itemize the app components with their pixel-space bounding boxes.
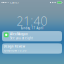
- staticText: Tomorrow 10:00: [4, 49, 27, 52]
- staticText: 21:40: [16, 13, 47, 29]
- button[interactable]: Alex Morgan: [2, 31, 62, 41]
- button[interactable]: Design Review: [2, 43, 62, 54]
- staticText: Sunday, 17 April: [20, 26, 43, 30]
- staticText: Carrier: [10, 1, 19, 4]
- staticText: Design Review: [4, 45, 25, 48]
- staticText: Alex Morgan: [10, 32, 28, 36]
- staticText: See you at eight: [10, 36, 33, 40]
